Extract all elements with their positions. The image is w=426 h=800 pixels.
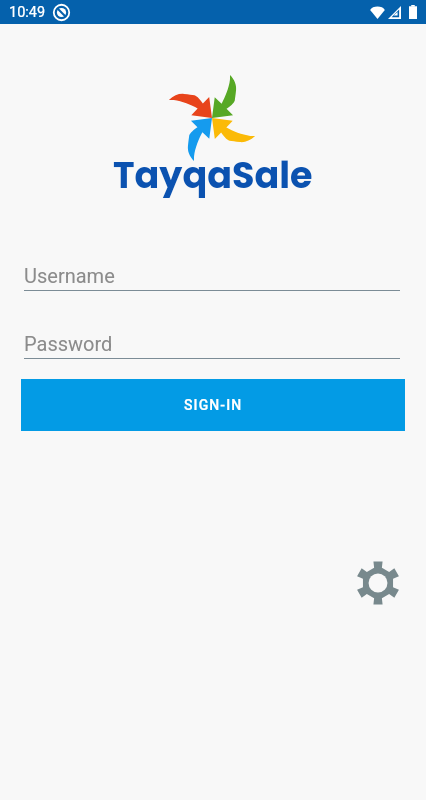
button[interactable]: Settings xyxy=(356,561,400,605)
staticText: Password xyxy=(24,332,113,355)
button[interactable]: Username xyxy=(24,262,400,291)
staticText: Username xyxy=(24,264,115,287)
button[interactable]: SIGN-IN xyxy=(21,379,405,431)
staticText: SIGN-IN xyxy=(184,397,243,413)
staticText: TayqaSale xyxy=(113,150,313,201)
staticText: 10:49 xyxy=(9,4,46,21)
button[interactable]: Password xyxy=(24,330,400,359)
